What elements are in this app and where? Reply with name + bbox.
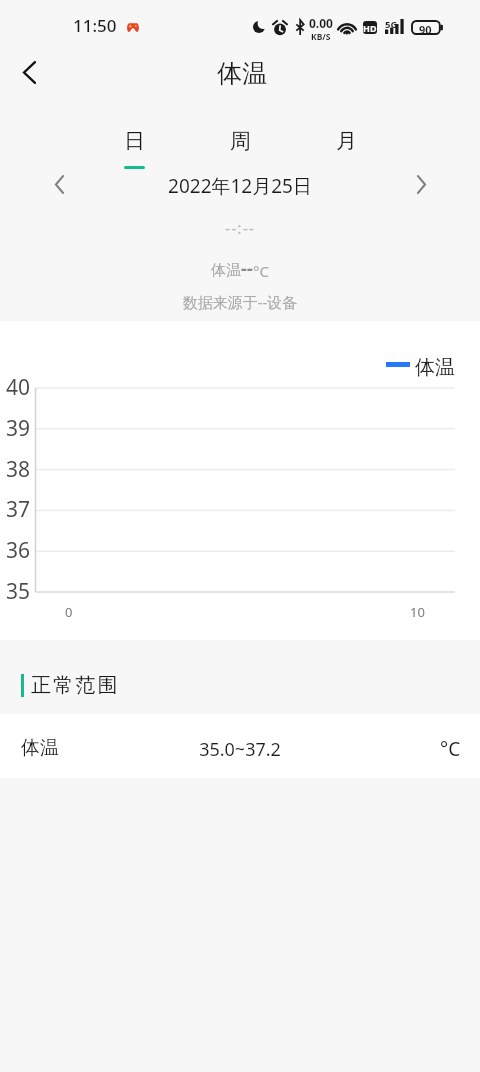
staticText: 月 xyxy=(336,128,357,154)
staticText: 0 xyxy=(65,603,73,621)
staticText: 10 xyxy=(410,603,425,621)
staticText: 体温 xyxy=(211,261,241,280)
staticText: 38 xyxy=(6,455,31,484)
staticText: 日 xyxy=(124,128,145,154)
staticText: 体温 xyxy=(217,58,267,89)
staticText: -- xyxy=(241,256,253,281)
staticText: °C xyxy=(440,736,461,762)
button[interactable]: 日 xyxy=(81,128,187,169)
button[interactable]: Next day xyxy=(398,162,444,206)
staticText: 0.00 xyxy=(309,15,333,31)
staticText: 正常范围 xyxy=(31,673,120,698)
staticText: 35.0~37.2 xyxy=(0,737,480,762)
staticText: 40 xyxy=(6,373,31,402)
staticText: 体温 xyxy=(21,736,59,760)
staticText: 11:50 xyxy=(73,14,117,37)
staticText: 周 xyxy=(230,128,251,154)
staticText: 2022年12月25日 xyxy=(0,173,480,199)
staticText: °C xyxy=(253,261,269,281)
staticText: 36 xyxy=(6,536,31,565)
button[interactable]: Previous day xyxy=(36,162,82,206)
staticText: 体温 xyxy=(415,355,455,380)
button[interactable]: Back xyxy=(1,44,57,100)
button[interactable]: 周 xyxy=(187,128,293,169)
staticText: 90 xyxy=(419,22,432,37)
staticText: HD xyxy=(363,22,377,34)
staticText: KB/S xyxy=(311,31,331,43)
button[interactable]: 体温 xyxy=(0,714,480,778)
staticText: 35 xyxy=(6,577,31,606)
staticText: 5G xyxy=(385,18,398,31)
staticText: 39 xyxy=(6,414,31,443)
staticText: 数据来源于--设备 xyxy=(0,292,480,312)
button[interactable]: 月 xyxy=(293,128,399,169)
staticText: 37 xyxy=(6,495,31,524)
